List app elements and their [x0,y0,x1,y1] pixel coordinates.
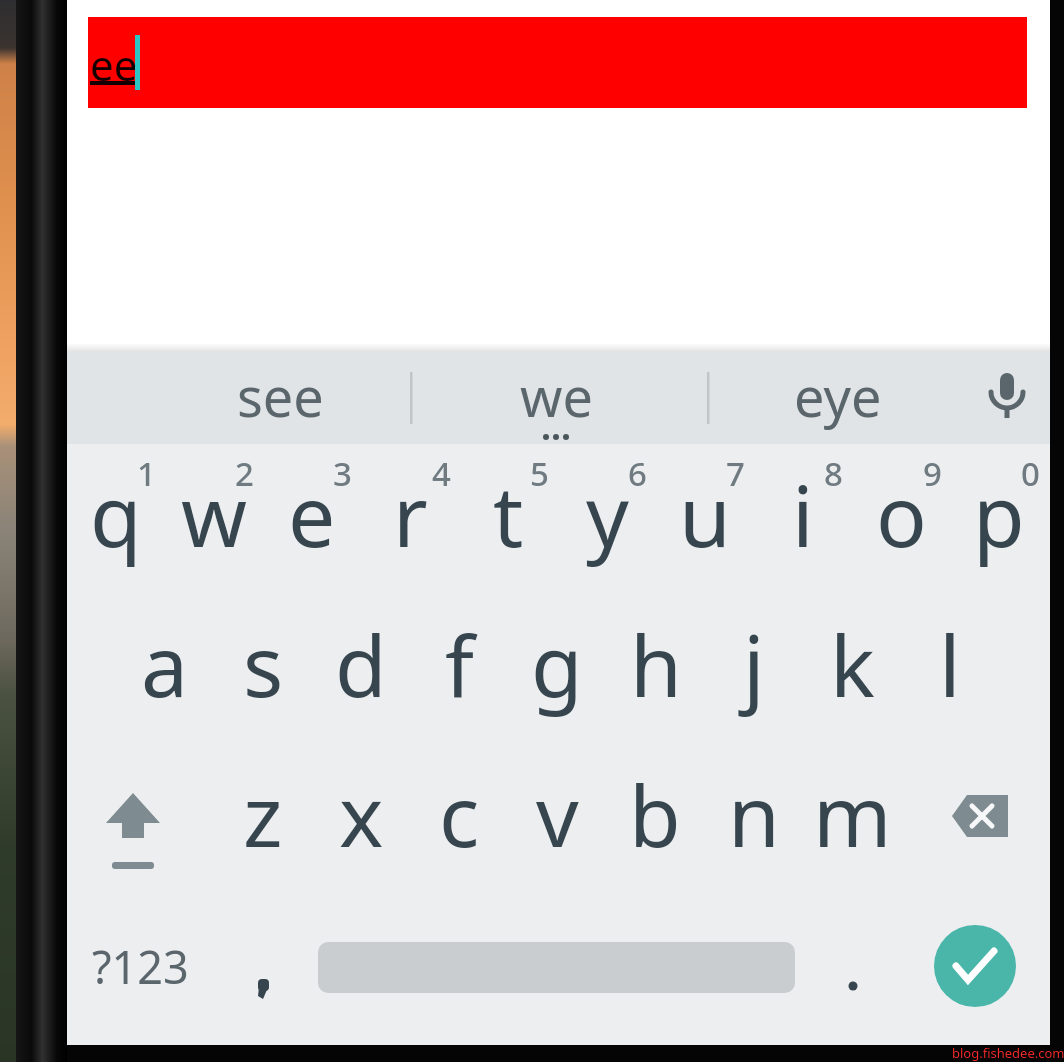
staticText: e [288,457,336,571]
button[interactable]: m [804,744,900,884]
staticText: g [531,607,583,721]
button[interactable]: r [362,444,458,584]
staticText: o [876,457,927,571]
staticText: s [243,607,284,721]
button[interactable]: k [804,594,900,734]
staticText: t [493,457,524,571]
button[interactable]: h [608,594,704,734]
button[interactable]: eye [718,349,958,442]
staticText: m [813,757,892,871]
staticText: h [630,607,682,721]
button[interactable]: q [68,444,164,584]
staticText: see [237,359,324,433]
button[interactable]: l [902,594,998,734]
button[interactable]: u [657,444,753,584]
button[interactable]: e [264,444,360,584]
staticText: r [393,457,428,571]
button[interactable]: a [117,594,213,734]
button[interactable]: w [166,444,262,584]
button[interactable]: b [607,744,703,884]
button[interactable]: d [313,594,409,734]
staticText: b [629,757,681,871]
staticText: 2 [235,451,254,496]
button[interactable]: j [706,594,802,734]
staticText: eye [794,359,882,433]
button[interactable] [68,749,198,889]
staticText: ?123 [92,936,189,997]
button[interactable]: n [706,744,802,884]
button[interactable] [215,899,311,1039]
button[interactable]: g [509,594,605,734]
staticText: 9 [923,451,942,496]
staticText: 1 [137,451,156,496]
button[interactable]: ?123 [75,896,205,1036]
staticText: k [830,607,875,721]
staticText: p [973,457,1025,571]
button[interactable]: s [215,594,311,734]
staticText: x [339,757,384,871]
button[interactable]: p [951,444,1047,584]
staticText: l [939,607,961,721]
staticText: 6 [628,451,647,496]
button[interactable] [970,351,1044,444]
staticText: q [90,457,142,571]
staticText: 3 [333,451,352,496]
button[interactable] [934,925,1016,1007]
staticText: 0 [1021,451,1040,496]
button[interactable]: o [853,444,949,584]
button[interactable]: x [313,744,409,884]
button[interactable] [805,899,901,1039]
button[interactable] [915,749,1045,889]
staticText: 7 [726,451,745,496]
staticText: 5 [530,451,549,496]
staticText: u [679,457,731,571]
button[interactable]: f [411,594,507,734]
staticText: v [536,757,579,871]
staticText: blog.fishedee.com [952,1044,1064,1062]
button[interactable]: i [755,444,851,584]
button[interactable]: z [215,744,311,884]
button[interactable]: y [559,444,655,584]
button[interactable]: c [411,744,507,884]
staticText: ee [90,36,138,93]
button[interactable]: we [436,349,676,442]
staticText: 8 [824,451,843,496]
staticText: i [792,457,814,571]
staticText: z [243,757,283,871]
staticText: y [586,457,629,571]
staticText: a [141,607,189,721]
staticText: j [743,607,765,721]
staticText: c [439,757,480,871]
staticText: w [181,457,248,571]
staticText: we [520,359,593,433]
button[interactable]: v [509,744,605,884]
button[interactable]: t [460,444,556,584]
staticText: d [335,607,387,721]
staticText: n [728,757,780,871]
button[interactable]: see [160,349,400,442]
button[interactable]: ee [88,17,1027,108]
staticText: 4 [432,451,451,496]
staticText: f [445,607,474,721]
